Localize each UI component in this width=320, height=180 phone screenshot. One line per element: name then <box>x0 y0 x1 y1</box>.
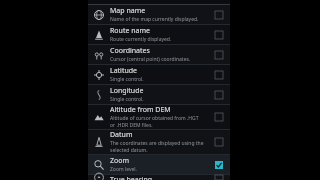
button[interactable]: Datum <box>88 130 230 155</box>
button[interactable]: Map name checkbox <box>212 8 226 22</box>
staticText: Coordinates <box>110 46 150 56</box>
staticText: Datum <box>110 130 133 140</box>
button[interactable]: Altitude from DEM <box>88 105 230 130</box>
staticText: Zoom <box>110 156 130 166</box>
staticText: The coordinates are displayed using the <box>110 140 204 147</box>
button[interactable]: Latitude checkbox <box>212 68 226 82</box>
button[interactable]: Longitude checkbox <box>212 88 226 102</box>
button[interactable]: Altitude from DEM checkbox <box>212 110 226 124</box>
button[interactable]: Map name <box>88 5 230 25</box>
staticText: Cursor (central point) coordinates. <box>110 56 191 63</box>
staticText: Name of the map currently displayed. <box>110 16 199 23</box>
button[interactable]: True bearing <box>88 175 230 180</box>
button[interactable]: Route name <box>88 25 230 45</box>
staticText: Altitude from DEM <box>110 105 171 115</box>
button[interactable]: True bearing checkbox <box>212 175 226 180</box>
staticText: Map name <box>110 6 146 16</box>
staticText: Altitude of cursor obtained from .HGT <box>110 115 199 122</box>
staticText: or .HDR DEM files. <box>110 122 153 129</box>
staticText: True bearing <box>110 175 153 180</box>
button[interactable]: Datum checkbox <box>212 135 226 149</box>
button[interactable]: Latitude <box>88 65 230 85</box>
staticText: selected datum. <box>110 147 148 154</box>
button[interactable]: Coordinates checkbox <box>212 48 226 62</box>
staticText: Longitude <box>110 86 144 96</box>
staticText: Latitude <box>110 66 138 76</box>
staticText: Zoom level. <box>110 166 137 173</box>
button[interactable]: Zoom <box>88 155 230 175</box>
staticText: Single control. <box>110 96 144 103</box>
button[interactable]: Route name checkbox <box>212 28 226 42</box>
button[interactable]: Longitude <box>88 85 230 105</box>
button[interactable]: Coordinates <box>88 45 230 65</box>
staticText: Route name <box>110 26 150 36</box>
staticText: Route currently displayed. <box>110 36 172 43</box>
button[interactable]: Zoom checkbox <box>212 158 226 172</box>
staticText: Single control. <box>110 76 144 83</box>
